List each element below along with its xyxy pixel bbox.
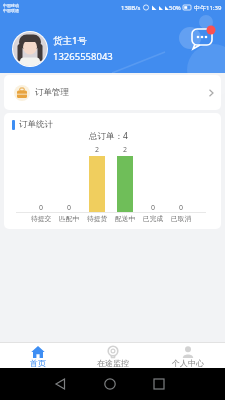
staticText: 货主1号: [53, 34, 87, 47]
staticText: 中午11:39: [194, 4, 222, 12]
staticText: 已完成: [143, 214, 164, 223]
staticText: 个人中心: [172, 358, 204, 368]
staticText: 中国移动: [3, 3, 19, 8]
button[interactable]: 订单管理: [4, 75, 221, 110]
staticText: 0: [67, 203, 72, 213]
button[interactable]: [188, 24, 218, 54]
staticText: 中国联通: [3, 8, 19, 13]
button[interactable]: 首页: [0, 343, 75, 368]
staticText: 订单管理: [35, 87, 69, 98]
staticText: 订单统计: [19, 119, 53, 130]
staticText: 2: [123, 145, 128, 155]
staticText: 在途监控: [97, 358, 129, 368]
staticText: 匹配中: [59, 214, 80, 223]
staticText: 首页: [30, 358, 46, 368]
staticText: 2: [95, 145, 100, 155]
staticText: 配送中: [115, 214, 136, 223]
staticText: 0: [39, 203, 44, 213]
button[interactable]: 个人中心: [150, 343, 225, 368]
staticText: 50%: [169, 4, 181, 12]
staticText: 138B/s: [121, 4, 141, 12]
staticText: 待提货: [87, 214, 108, 223]
staticText: 13265558043: [53, 50, 113, 63]
staticText: 已取消: [171, 214, 192, 223]
staticText: 待提交: [31, 214, 52, 223]
staticText: 总订单：4: [89, 130, 128, 142]
staticText: 0: [151, 203, 156, 213]
staticText: 0: [179, 203, 184, 213]
button[interactable]: 在途监控: [75, 343, 150, 368]
